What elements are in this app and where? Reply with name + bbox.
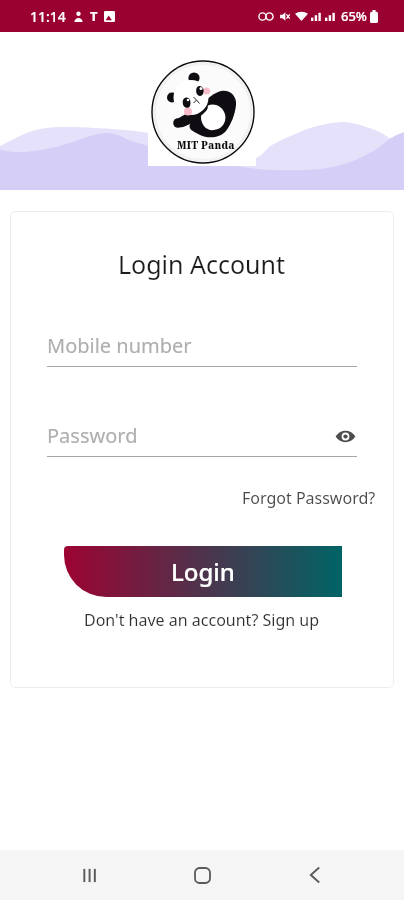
staticText: Login: [171, 555, 235, 588]
staticText: MIT Panda: [177, 138, 235, 152]
staticText: Password: [47, 422, 138, 449]
button[interactable]: Show password: [333, 424, 357, 448]
staticText: Forgot Password?: [242, 487, 376, 509]
button[interactable]: Home: [178, 851, 226, 899]
staticText: T: [90, 7, 98, 25]
button[interactable]: Back: [291, 851, 339, 899]
button[interactable]: Don't have an account? Sign up: [84, 609, 320, 631]
staticText: Mobile number: [47, 332, 192, 359]
staticText: Don't have an account? Sign up: [84, 609, 320, 631]
staticText: 11:14: [30, 7, 66, 26]
button[interactable]: Forgot Password?: [242, 487, 376, 509]
staticText: 65%: [341, 7, 367, 25]
button[interactable]: Login: [64, 546, 342, 597]
staticText: Login Account: [118, 247, 286, 281]
button[interactable]: Recents: [65, 851, 113, 899]
